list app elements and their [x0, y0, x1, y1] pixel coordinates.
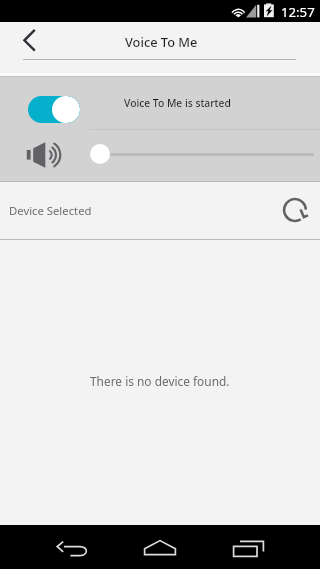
button[interactable]: Back — [13, 22, 47, 62]
button[interactable]: Recent apps — [220, 525, 280, 569]
staticText: Voice To Me — [125, 33, 198, 50]
button[interactable]: Device Selected — [0, 182, 320, 239]
staticText: Voice To Me is started — [124, 96, 231, 110]
button[interactable]: Voice To Me toggle — [28, 96, 80, 123]
staticText: There is no device found. — [90, 373, 230, 389]
button[interactable]: Volume slider — [90, 144, 110, 164]
staticText: 12:57 — [281, 3, 315, 21]
button[interactable]: Back — [42, 525, 102, 569]
button[interactable]: Refresh — [278, 194, 310, 226]
staticText: Device Selected — [9, 203, 92, 218]
button[interactable]: Home — [130, 525, 190, 569]
